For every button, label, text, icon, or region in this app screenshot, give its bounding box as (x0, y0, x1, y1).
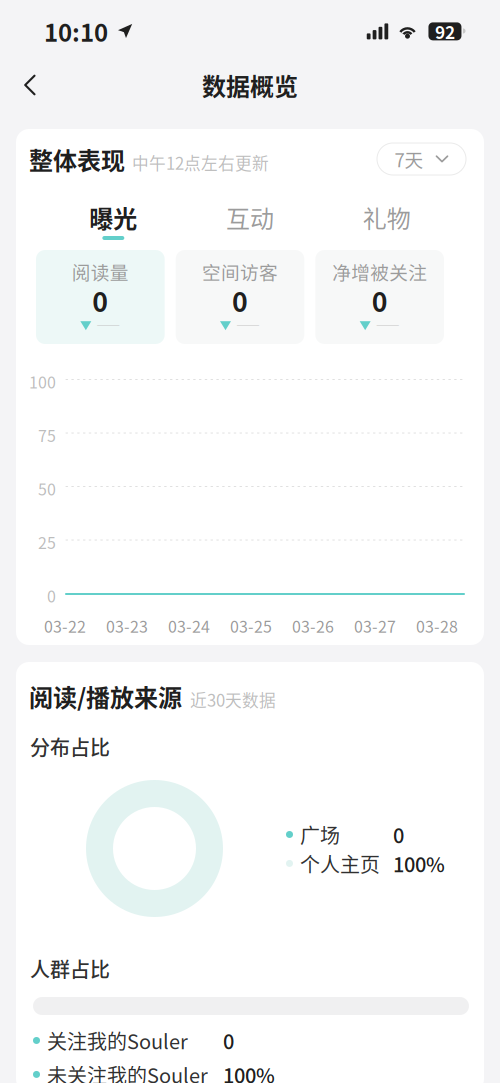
staticText: 近30天数据 (190, 687, 276, 712)
button[interactable]: 净增被关注 (315, 250, 444, 344)
button[interactable]: 阅读量 (36, 250, 165, 344)
staticText: 数据概览 (202, 68, 298, 102)
staticText: 03-23 (106, 614, 148, 637)
staticText: 曝光 (89, 200, 137, 235)
staticText: 0 (223, 1026, 234, 1055)
staticText: 整体表现 (29, 142, 125, 177)
staticText: ―― (236, 317, 260, 334)
staticText: 25 (38, 530, 56, 554)
staticText: 0 (372, 281, 388, 320)
staticText: 0 (232, 281, 248, 320)
staticText: 50 (38, 477, 56, 500)
staticText: 分布占比 (30, 732, 110, 761)
staticText: 礼物 (363, 200, 411, 235)
staticText: 净增被关注 (332, 258, 427, 285)
staticText: 0 (47, 584, 56, 607)
staticText: 未关注我的Souler (47, 1060, 208, 1083)
staticText: 100 (29, 370, 56, 393)
staticText: 人群占比 (30, 954, 110, 983)
button[interactable]: 空间访客 (176, 250, 304, 344)
staticText: 空间访客 (202, 258, 278, 285)
staticText: 03-28 (416, 614, 458, 637)
staticText: 10:10 (44, 14, 108, 49)
staticText: ―― (96, 317, 120, 334)
staticText: 个人主页 (300, 849, 380, 878)
staticText: 0 (92, 281, 108, 320)
staticText: ―― (376, 317, 400, 334)
staticText: 100% (393, 849, 445, 878)
staticText: 03-27 (354, 614, 396, 637)
button[interactable]: 返回 (0, 61, 54, 108)
staticText: 100% (223, 1060, 275, 1083)
staticText: 03-24 (168, 614, 210, 637)
staticText: 7天 (394, 145, 423, 172)
staticText: 广场 (300, 820, 340, 849)
staticText: 03-25 (230, 614, 272, 637)
staticText: 75 (38, 423, 56, 447)
staticText: 03-22 (44, 614, 86, 637)
staticText: 阅读量 (72, 258, 129, 285)
staticText: 阅读/播放来源 (29, 679, 182, 714)
staticText: 中午12点左右更新 (132, 150, 269, 175)
staticText: 92 (435, 19, 455, 44)
staticText: 03-26 (292, 614, 334, 637)
button[interactable]: 7天 (377, 143, 466, 175)
staticText: 关注我的Souler (47, 1026, 188, 1055)
staticText: 互动 (226, 200, 274, 235)
button[interactable]: 礼物 (318, 200, 455, 242)
staticText: 0 (393, 820, 404, 849)
button[interactable]: 曝光 (45, 200, 182, 242)
button[interactable]: 互动 (182, 200, 318, 242)
